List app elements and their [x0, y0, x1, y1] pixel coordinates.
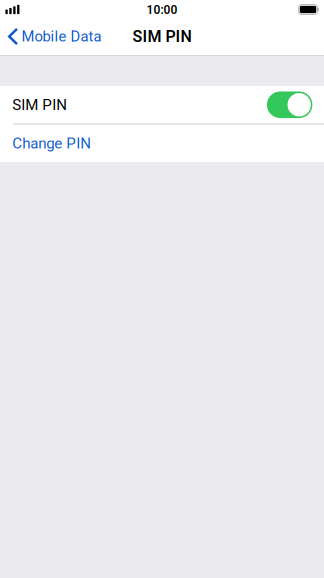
staticText: 10:00 — [146, 3, 177, 17]
button[interactable]: Mobile Data — [0, 24, 109, 49]
button[interactable]: Change PIN — [0, 124, 324, 162]
staticText: Mobile Data — [21, 28, 101, 45]
staticText: SIM PIN — [132, 27, 191, 46]
staticText: SIM PIN — [12, 96, 67, 114]
button[interactable]: SIM PIN — [0, 86, 324, 123]
staticText: Change PIN — [12, 134, 91, 152]
